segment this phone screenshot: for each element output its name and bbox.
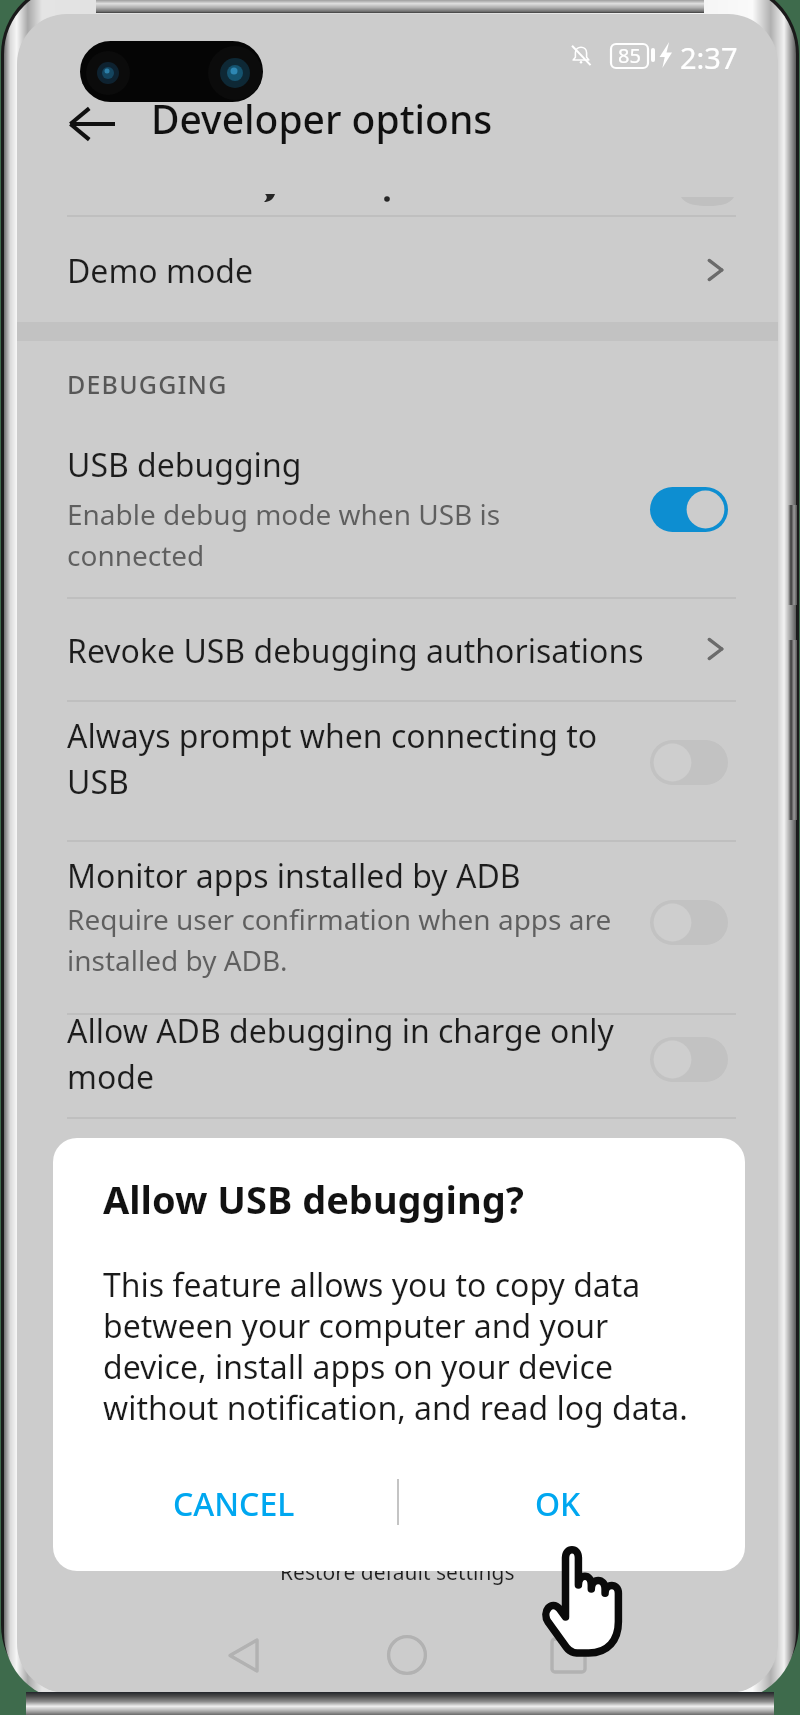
- button[interactable]: Recent apps: [528, 1615, 608, 1693]
- staticText: USB debugging: [67, 443, 302, 487]
- staticText: DEBUGGING: [67, 367, 228, 401]
- button[interactable]: Home: [367, 1615, 447, 1693]
- staticText: Demo mode: [67, 249, 254, 293]
- staticText: Allow USB debugging?: [103, 1173, 524, 1225]
- staticText: This feature allows you to copy data bet…: [103, 1263, 688, 1430]
- staticText: Revoke USB debugging authorisations: [67, 629, 644, 673]
- button[interactable]: Monitor apps installed by ADB: [17, 842, 778, 1013]
- button[interactable]: Toggle off: [650, 1037, 728, 1082]
- button[interactable]: CANCEL: [144, 1468, 324, 1540]
- staticText: Developer options: [151, 92, 493, 145]
- staticText: Capture all bluetooth HCI packets in a f…: [67, 1365, 541, 1444]
- staticText: Require user confirmation when apps are …: [67, 900, 612, 979]
- button[interactable]: Toggle on: [650, 487, 728, 532]
- button[interactable]: Allow ADB debugging in charge only mode: [17, 1015, 778, 1117]
- button[interactable]: Back: [204, 1615, 284, 1693]
- button[interactable]: OK: [468, 1468, 648, 1540]
- button[interactable]: Revoke USB debugging authorisations: [17, 599, 778, 700]
- staticText: OK: [535, 1482, 581, 1526]
- button[interactable]: Always prompt when connecting to USB: [17, 702, 778, 840]
- staticText: Check apps installed via ADB/ADT for har…: [67, 1191, 553, 1270]
- staticText: Always prompt when connecting to USB: [67, 714, 598, 803]
- staticText: Enable debug mode when USB is connected: [67, 495, 501, 574]
- staticText: Monitor apps installed by ADB: [67, 854, 521, 898]
- button[interactable]: Restore default settings: [17, 1517, 778, 1627]
- staticText: 2:37: [680, 38, 738, 72]
- staticText: Allow ADB debugging in charge only mode: [67, 1009, 614, 1098]
- staticText: Bluetooth HCI snoop log: [67, 1313, 437, 1357]
- staticText: OEM unlocking: [67, 1471, 295, 1515]
- button[interactable]: Demo mode: [17, 217, 778, 322]
- button[interactable]: USB debugging: [17, 417, 778, 597]
- button[interactable]: Back: [58, 90, 126, 158]
- staticText: CANCEL: [173, 1482, 295, 1526]
- staticText: Restore default settings: [280, 1558, 515, 1587]
- button[interactable]: Toggle off: [650, 740, 728, 785]
- staticText: 85: [618, 42, 641, 69]
- button[interactable]: Toggle off: [650, 900, 728, 945]
